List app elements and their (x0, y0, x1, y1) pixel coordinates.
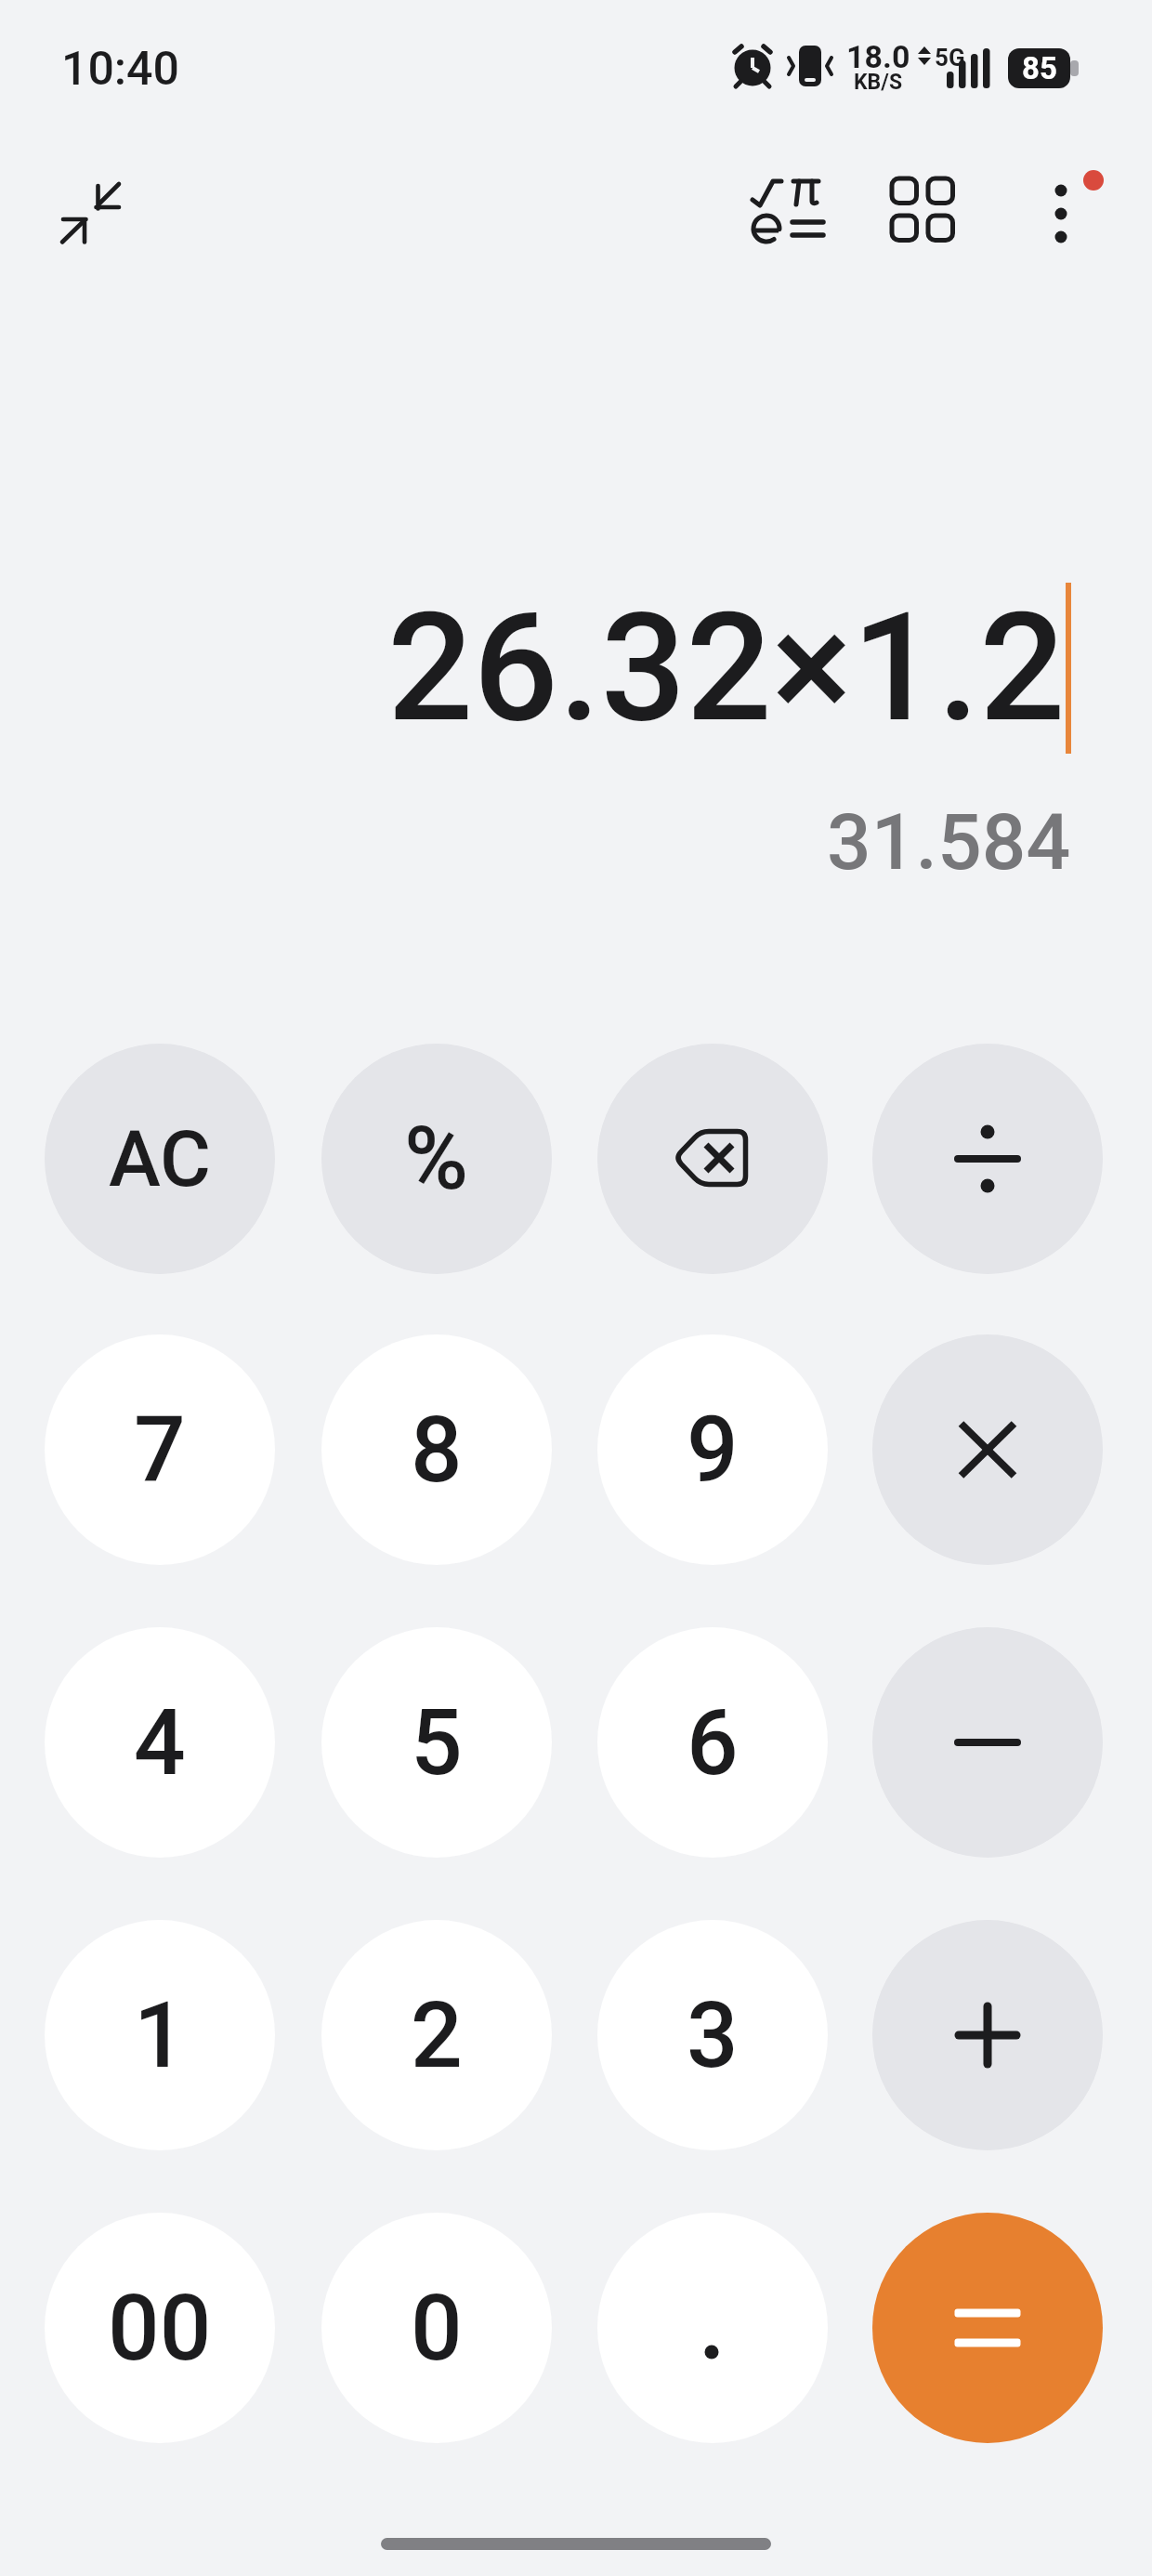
staticText: 3 (687, 1982, 739, 2089)
staticText: 10:40 (61, 42, 179, 97)
button[interactable] (872, 1044, 1103, 1274)
staticText: 85 (1022, 50, 1057, 86)
button[interactable] (872, 1920, 1103, 2150)
button[interactable] (872, 1627, 1103, 1858)
button[interactable] (872, 2213, 1103, 2443)
staticText: 4 (134, 1689, 186, 1796)
button[interactable]: 2 (321, 1920, 552, 2150)
button[interactable]: 3 (597, 1920, 828, 2150)
button[interactable]: 1 (45, 1920, 275, 2150)
staticText: AC (109, 1113, 211, 1204)
staticText: 26.32×1.2 (387, 580, 1066, 756)
button[interactable] (872, 1334, 1103, 1565)
staticText: 7 (134, 1397, 186, 1504)
staticText: 2 (411, 1982, 463, 2089)
staticText: 31.584 (827, 796, 1071, 887)
staticText: % (404, 1108, 469, 1210)
button[interactable]: 6 (597, 1627, 828, 1858)
staticText: 8 (411, 1397, 463, 1504)
staticText: 00 (108, 2275, 212, 2382)
staticText: 9 (687, 1397, 739, 1504)
button[interactable] (597, 1044, 828, 1274)
button[interactable] (871, 160, 974, 262)
button[interactable]: 8 (321, 1334, 552, 1565)
staticText: 1 (134, 1982, 186, 2089)
staticText: 5 (411, 1689, 463, 1796)
button[interactable] (734, 160, 836, 262)
button[interactable]: 9 (597, 1334, 828, 1565)
button[interactable]: 4 (45, 1627, 275, 1858)
staticText: KB/S (854, 70, 903, 95)
button[interactable]: AC (45, 1044, 275, 1274)
staticText: 0 (411, 2275, 463, 2382)
staticText: 6 (687, 1689, 739, 1796)
button[interactable] (597, 2213, 828, 2443)
button[interactable]: 0 (321, 2213, 552, 2443)
staticText: 18.0 (846, 38, 910, 75)
button[interactable] (37, 160, 139, 262)
button[interactable]: 00 (45, 2213, 275, 2443)
button[interactable]: 7 (45, 1334, 275, 1565)
staticText: 5G (935, 44, 965, 72)
button[interactable] (1022, 160, 1124, 262)
button[interactable]: 5 (321, 1627, 552, 1858)
button[interactable]: % (321, 1044, 552, 1274)
